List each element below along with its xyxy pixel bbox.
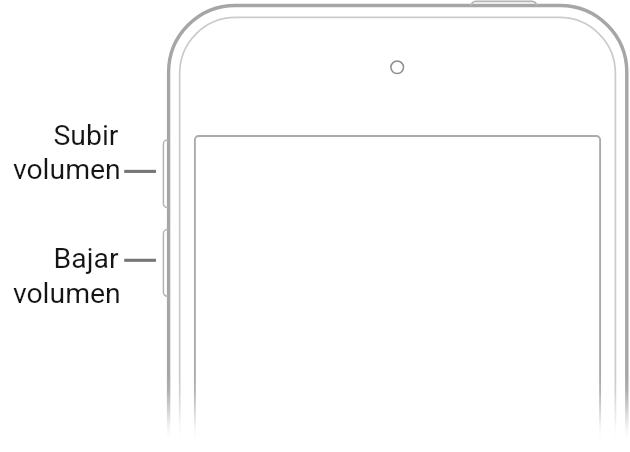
button[interactable]: Power button bbox=[470, 0, 537, 8]
button[interactable]: Volume up button bbox=[160, 138, 172, 209]
button[interactable]: Volume down button bbox=[160, 228, 172, 298]
button[interactable]: Subir volumen bbox=[8, 118, 171, 186]
button[interactable]: Bajar volumen bbox=[8, 241, 171, 309]
